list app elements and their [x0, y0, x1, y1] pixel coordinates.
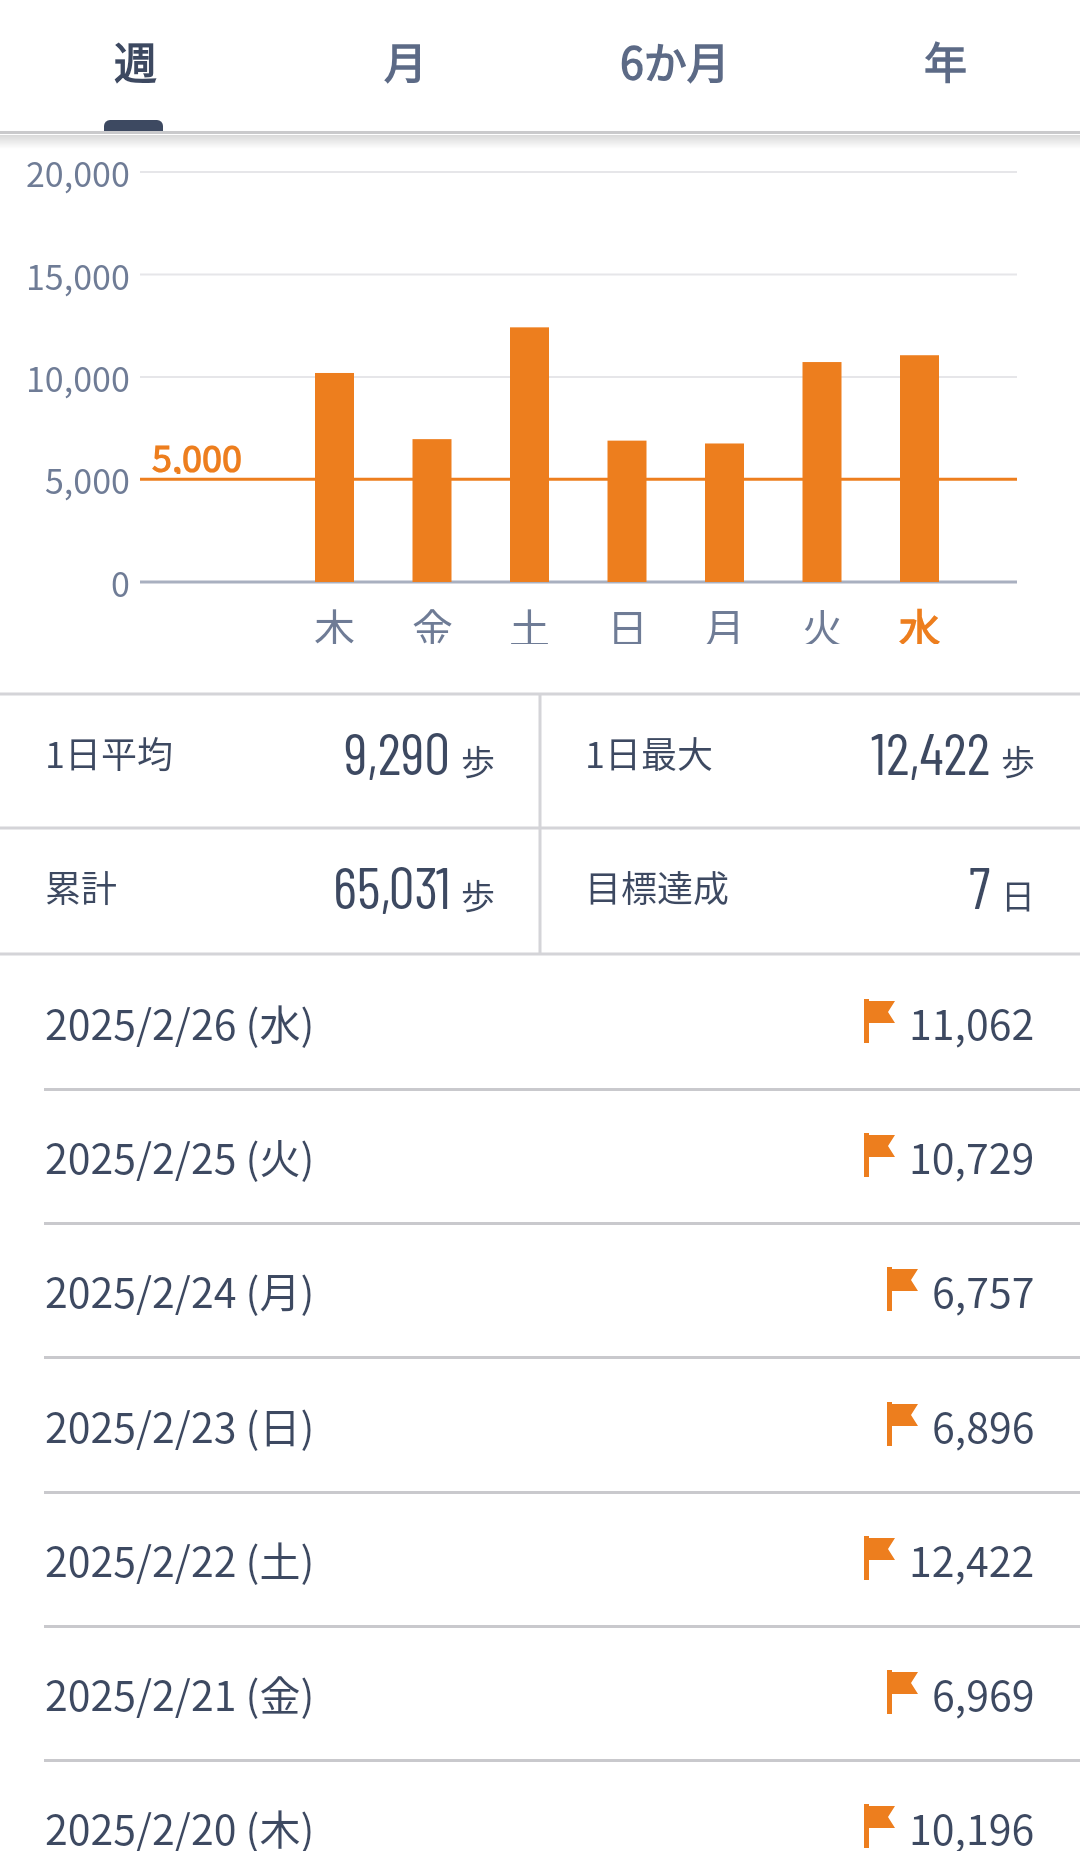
button[interactable]: 週 — [0, 0, 270, 119]
button[interactable]: 2025/2/26 (水) — [0, 954, 1080, 1088]
button[interactable]: 月 — [270, 0, 540, 119]
staticText: 1日最大 — [585, 726, 713, 778]
button[interactable]: 2025/2/23 (日) — [0, 1357, 1080, 1491]
staticText: 7 — [969, 851, 991, 921]
button[interactable]: 6か月 — [540, 0, 810, 119]
staticText: 2025/2/20 (木) — [45, 1797, 315, 1851]
staticText: 5,000 — [45, 455, 130, 503]
staticText: 2025/2/24 (月) — [45, 1260, 315, 1319]
staticText: 6,757 — [932, 1260, 1035, 1319]
staticText: 2025/2/21 (金) — [45, 1663, 315, 1722]
staticText: 歩 — [461, 870, 495, 919]
staticText: 土 — [509, 596, 550, 644]
staticText: 2025/2/26 (水) — [45, 992, 315, 1051]
button[interactable]: 2025/2/20 (木) — [0, 1759, 1080, 1851]
staticText: 目標達成 — [585, 860, 730, 912]
staticText: 日 — [607, 596, 648, 644]
staticText: 2025/2/23 (日) — [45, 1395, 315, 1454]
staticText: 2025/2/22 (土) — [45, 1529, 315, 1588]
staticText: 65,031 — [333, 851, 451, 921]
staticText: 月 — [704, 596, 745, 644]
button[interactable]: 2025/2/22 (土) — [0, 1491, 1080, 1625]
staticText: 0 — [111, 558, 130, 606]
staticText: 累計 — [45, 860, 118, 912]
staticText: 10,196 — [909, 1797, 1035, 1851]
staticText: 9,290 — [344, 717, 451, 787]
staticText: 1日平均 — [45, 726, 173, 778]
button[interactable]: 2025/2/21 (金) — [0, 1625, 1080, 1759]
button[interactable]: 2025/2/25 (火) — [0, 1088, 1080, 1222]
staticText: 5,000 — [152, 430, 242, 474]
staticText: 20,000 — [26, 148, 130, 196]
staticText: 年 — [924, 29, 967, 91]
staticText: 6,896 — [932, 1395, 1035, 1454]
staticText: 月 — [384, 29, 427, 91]
staticText: 日 — [1001, 870, 1035, 919]
staticText: 11,062 — [909, 992, 1035, 1051]
staticText: 週 — [114, 29, 157, 91]
staticText: 12,422 — [871, 717, 991, 787]
staticText: 水 — [899, 596, 940, 644]
staticText: 10,000 — [26, 353, 130, 401]
staticText: 10,729 — [909, 1126, 1035, 1185]
staticText: 金 — [412, 596, 453, 644]
staticText: 木 — [314, 596, 355, 644]
staticText: 6,969 — [932, 1663, 1035, 1722]
staticText: 2025/2/25 (火) — [45, 1126, 315, 1185]
staticText: 歩 — [461, 736, 495, 785]
staticText: 歩 — [1001, 736, 1035, 785]
button[interactable]: 2025/2/24 (月) — [0, 1222, 1080, 1356]
staticText: 15,000 — [26, 251, 130, 299]
staticText: 6か月 — [620, 29, 730, 91]
button[interactable]: 年 — [810, 0, 1080, 119]
staticText: 12,422 — [909, 1529, 1035, 1588]
staticText: 火 — [802, 596, 843, 644]
